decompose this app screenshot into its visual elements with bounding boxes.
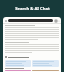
button[interactable] (5, 60, 31, 67)
button[interactable] (32, 60, 59, 67)
button[interactable]: Image result (5, 70, 31, 71)
button[interactable]: Menu (3, 17, 61, 72)
button[interactable]: Search & AI Chat (0, 0, 64, 17)
button[interactable] (8, 19, 53, 22)
button[interactable]: Menu (4, 19, 7, 22)
button[interactable]: Image result (32, 70, 59, 71)
button[interactable]: More options (57, 19, 60, 22)
staticText: Search & AI Chat (15, 6, 50, 12)
button[interactable]: Tabs (54, 19, 57, 22)
